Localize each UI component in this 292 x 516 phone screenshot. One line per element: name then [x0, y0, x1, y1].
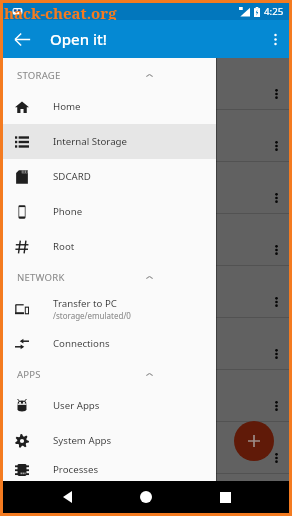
button[interactable]: Item options [263, 393, 289, 419]
button[interactable]: More options [261, 25, 289, 53]
button[interactable]: User Apps [3, 388, 216, 423]
button[interactable]: Item options [263, 341, 289, 367]
button[interactable]: Item options [3, 266, 289, 317]
staticText: APPS [17, 368, 41, 381]
staticText: Transfer to PC [53, 297, 117, 310]
button[interactable]: Back [52, 482, 82, 512]
button[interactable]: Connections [3, 326, 216, 361]
staticText: Home [53, 100, 81, 113]
button[interactable]: Processes [3, 458, 216, 481]
staticText: NETWORK [17, 271, 65, 284]
button[interactable]: Recents [210, 482, 240, 512]
button[interactable]: Item options [3, 422, 289, 473]
staticText: Processes [53, 463, 99, 476]
button[interactable]: Item options [3, 214, 289, 265]
button[interactable]: Home [3, 89, 216, 124]
staticText: SDCARD [53, 170, 91, 183]
button[interactable]: Item options [3, 370, 289, 421]
button[interactable]: Transfer to PC [3, 291, 216, 326]
button[interactable]: Back [3, 20, 41, 58]
button[interactable]: Phone [3, 194, 216, 229]
button[interactable]: Item options [3, 58, 289, 109]
button[interactable]: Internal Storage [3, 124, 216, 159]
button[interactable]: Item options [263, 289, 289, 315]
button[interactable]: Item options [3, 474, 289, 481]
button[interactable]: Add [234, 421, 274, 461]
staticText: Open it! [50, 29, 107, 49]
button[interactable]: Item options [3, 318, 289, 369]
button[interactable]: Root [3, 229, 216, 264]
button[interactable]: Item options [263, 237, 289, 263]
staticText: /storage/emulated/0 [53, 310, 131, 321]
button[interactable]: Item options [263, 133, 289, 159]
button[interactable]: System Apps [3, 423, 216, 458]
staticText: Phone [53, 205, 83, 218]
button[interactable]: Item options [263, 81, 289, 107]
staticText: Internal Storage [53, 135, 128, 148]
button[interactable]: SDCARD [3, 159, 216, 194]
staticText: STORAGE [17, 69, 61, 82]
staticText: System Apps [53, 434, 112, 447]
staticText: hack-cheat.org [4, 3, 117, 20]
button[interactable]: Item options [263, 445, 289, 471]
staticText: Connections [53, 337, 110, 350]
button[interactable]: Item options [263, 185, 289, 211]
button[interactable]: Home [131, 482, 161, 512]
staticText: Root [53, 240, 75, 253]
button[interactable]: Item options [3, 110, 289, 161]
staticText: 4:25 [264, 5, 284, 18]
button[interactable]: Item options [3, 162, 289, 213]
staticText: User Apps [53, 399, 100, 412]
